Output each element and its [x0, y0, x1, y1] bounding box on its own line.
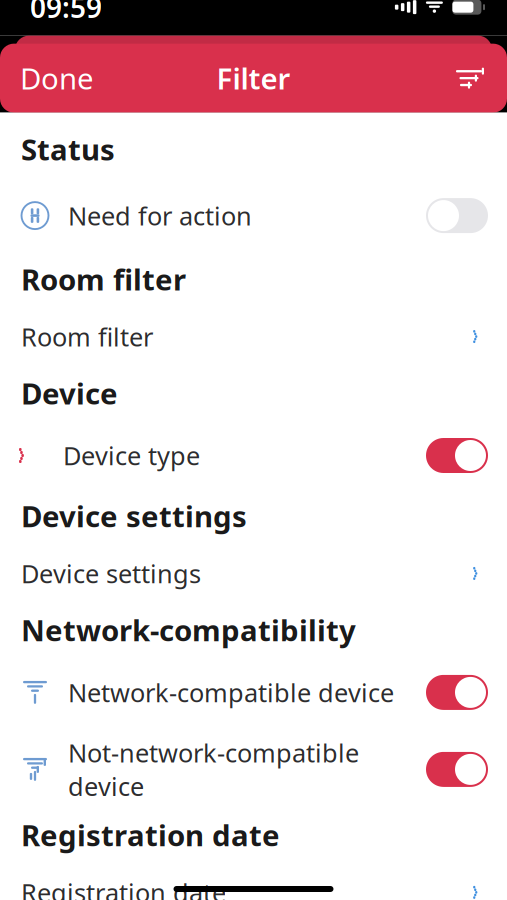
- button[interactable]: Need for action: [0, 190, 507, 242]
- staticText: 09:59: [30, 0, 102, 26]
- staticText: Network-compatibility: [21, 610, 356, 649]
- staticText: Status: [21, 130, 115, 169]
- staticText: Device settings: [21, 496, 247, 535]
- staticText: Room filter: [21, 320, 153, 353]
- button[interactable]: Device type: [0, 429, 507, 481]
- button[interactable]: Network-compatible device: [0, 666, 507, 718]
- staticText: Need for action: [68, 199, 252, 232]
- staticText: Device type: [63, 439, 200, 472]
- button[interactable]: Clear filters: [442, 54, 507, 102]
- staticText: Room filter: [21, 260, 186, 299]
- staticText: Done: [20, 59, 94, 98]
- staticText: Registration date: [21, 815, 280, 854]
- button[interactable]: Room filter: [0, 315, 507, 357]
- staticText: Network-compatible device: [68, 676, 394, 709]
- staticText: Device settings: [21, 557, 201, 590]
- staticText: Device: [21, 373, 118, 412]
- staticText: Registration date: [21, 875, 226, 900]
- staticText: Filter: [216, 59, 290, 98]
- staticText: Not-network-compatible device: [68, 736, 359, 803]
- button[interactable]: Not-network-compatible device: [0, 743, 507, 795]
- button[interactable]: Done: [0, 47, 110, 110]
- button[interactable]: Device settings: [0, 552, 507, 594]
- button[interactable]: Registration date: [0, 871, 507, 900]
